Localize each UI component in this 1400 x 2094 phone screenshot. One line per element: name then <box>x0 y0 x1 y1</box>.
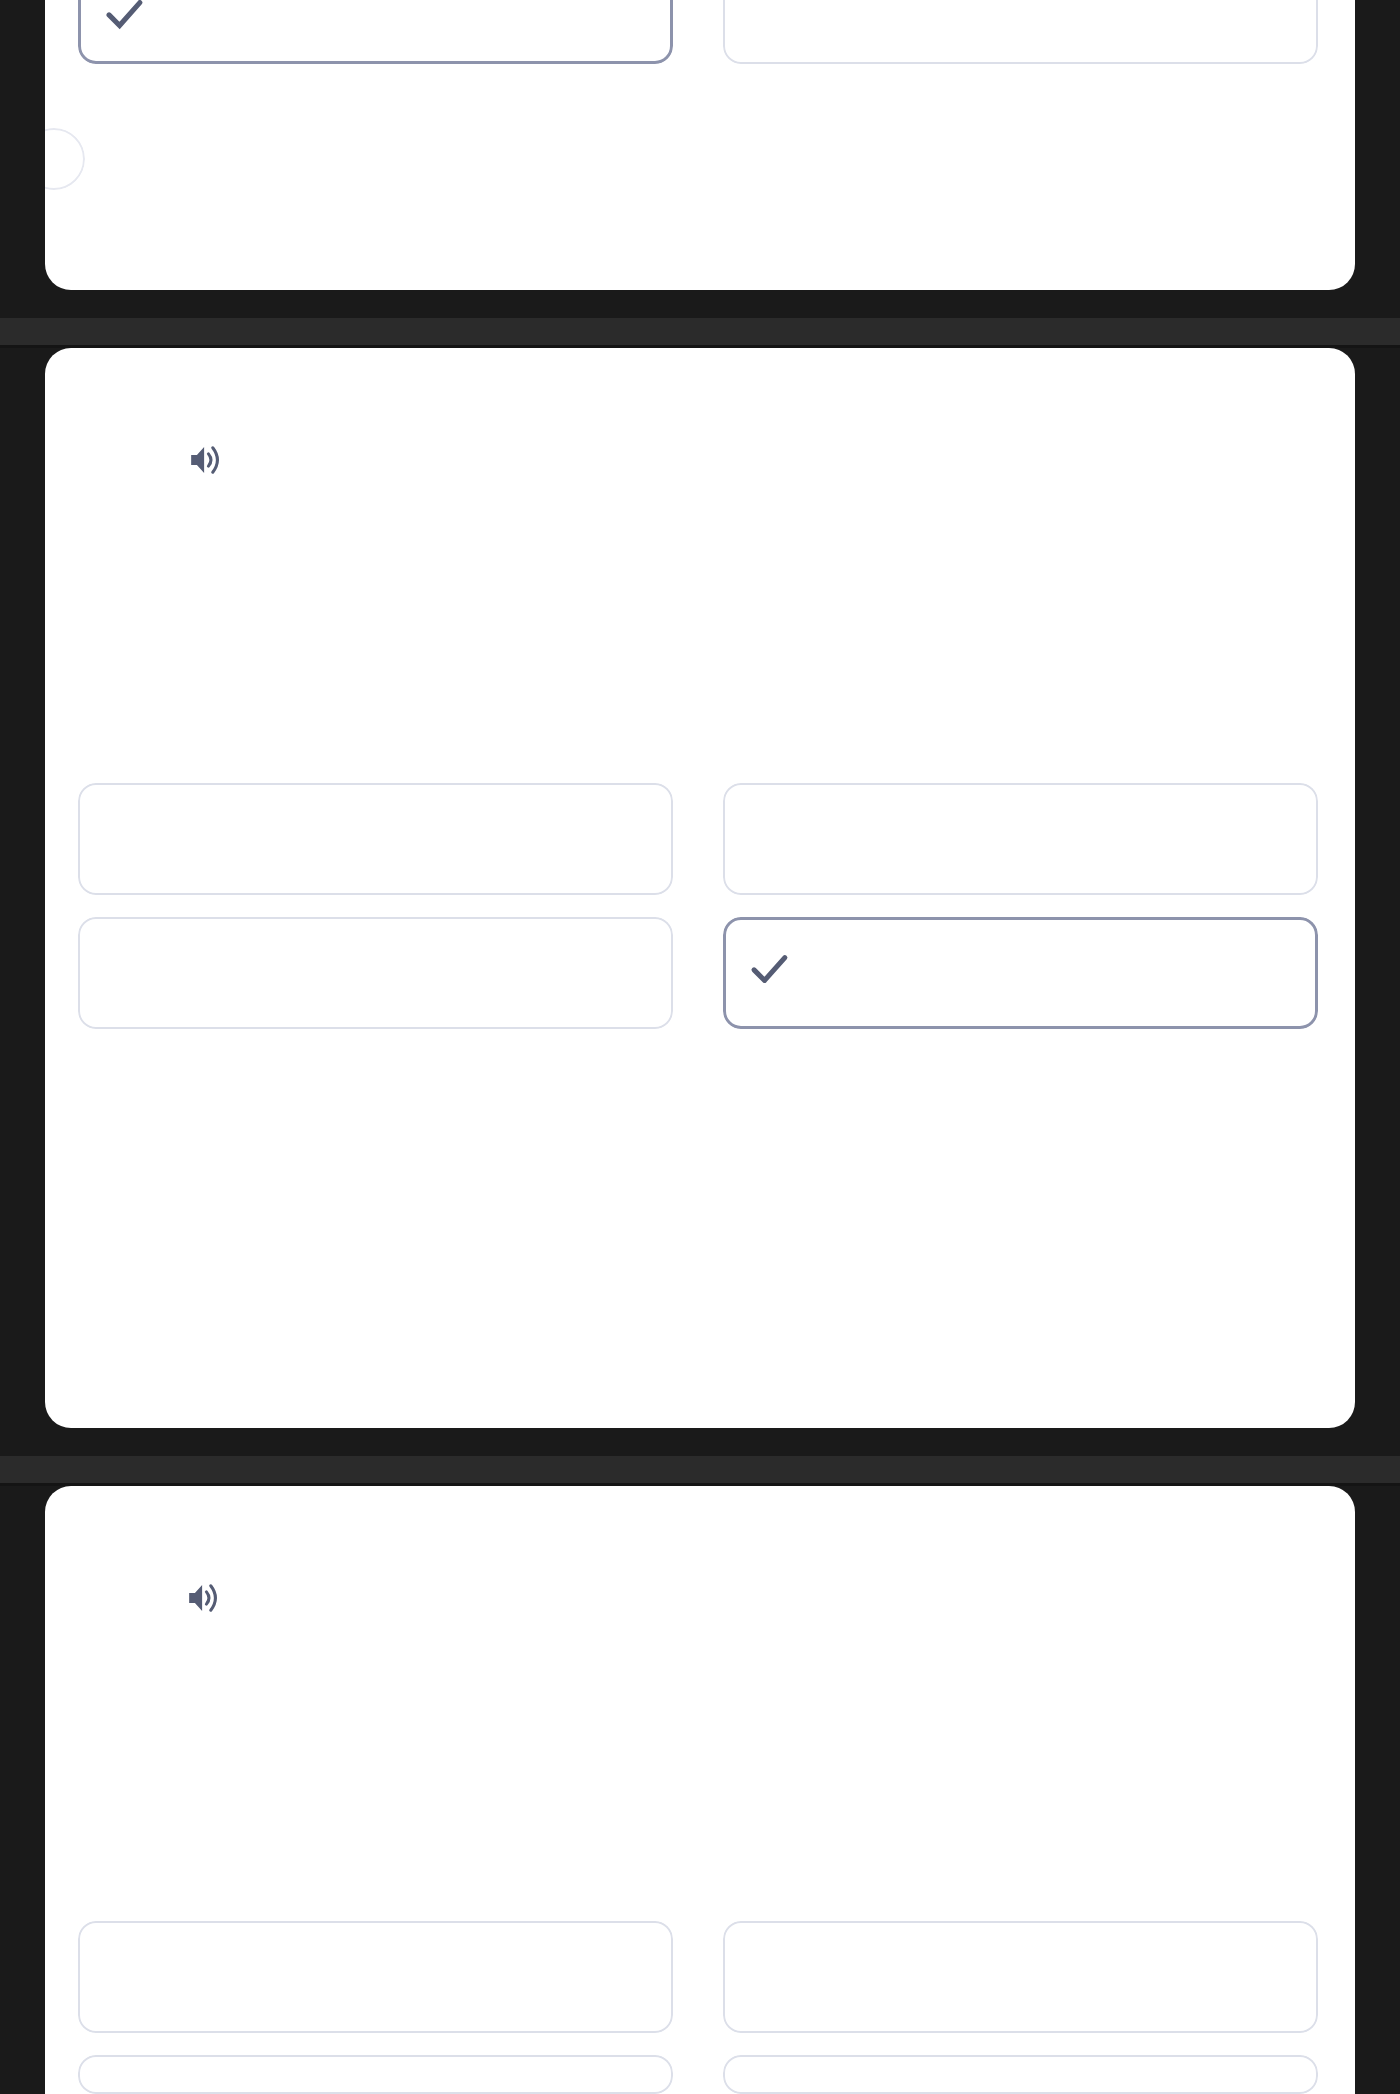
button[interactable]: Play audio <box>175 428 239 492</box>
button[interactable] <box>723 2055 1318 2094</box>
button[interactable] <box>78 2055 673 2094</box>
button[interactable] <box>723 1921 1318 2033</box>
button[interactable] <box>78 0 673 64</box>
button[interactable] <box>723 917 1318 1029</box>
button[interactable] <box>78 1921 673 2033</box>
button[interactable] <box>723 0 1318 64</box>
button[interactable]: Record answer <box>45 128 85 190</box>
button[interactable] <box>78 917 673 1029</box>
button[interactable]: Play audio <box>173 1566 237 1630</box>
button[interactable] <box>78 783 673 895</box>
button[interactable] <box>723 783 1318 895</box>
